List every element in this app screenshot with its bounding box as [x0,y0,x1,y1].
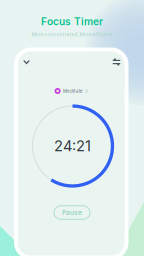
button[interactable]: Settings [108,54,124,70]
staticText: Focus Timer [41,15,103,28]
button[interactable]: Meditate [53,85,89,97]
button[interactable]: Collapse [18,54,34,70]
staticText: Meditate [63,88,83,94]
staticText: More concentrated, More efficient [31,32,112,37]
staticText: 24:21 [54,137,91,155]
staticText: Pause [62,208,82,217]
button[interactable]: Pause [54,206,90,219]
